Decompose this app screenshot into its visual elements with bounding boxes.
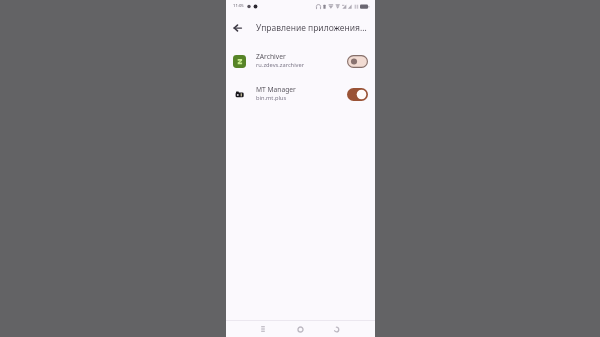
button[interactable]: ZArchiver [226, 45, 375, 78]
staticText: ZArchiver [256, 52, 286, 61]
button[interactable]: Back [326, 321, 346, 337]
button[interactable]: Recent apps [253, 321, 273, 337]
staticText: MT Manager [256, 85, 296, 94]
button[interactable]: Home [290, 321, 310, 337]
button[interactable]: Enabled [347, 88, 368, 101]
button[interactable]: Back [226, 14, 249, 42]
staticText: bin.mt.plus [256, 94, 287, 102]
staticText: ru.zdevs.zarchiver [256, 61, 305, 69]
staticText: 11:05 [233, 3, 244, 9]
button[interactable]: Disabled [347, 55, 368, 68]
staticText: Управление приложения… [256, 22, 367, 34]
button[interactable]: MT Manager [226, 78, 375, 111]
